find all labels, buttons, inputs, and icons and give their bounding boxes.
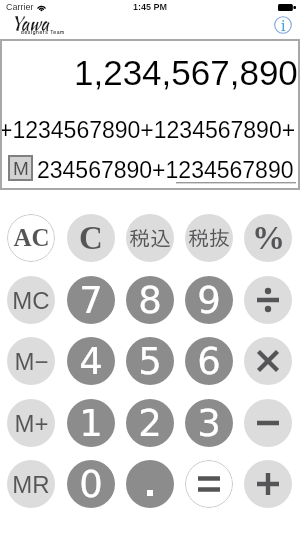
staticText: designers Team <box>21 29 65 35</box>
staticText: 1:45 PM <box>133 2 168 12</box>
button[interactable]: 3 <box>185 399 233 447</box>
staticText: i <box>281 16 286 34</box>
button[interactable]: 8 <box>126 276 174 324</box>
staticText: % <box>252 220 285 257</box>
staticText: 0 <box>79 463 103 506</box>
staticText: M− <box>14 348 49 375</box>
staticText: 5 <box>138 340 162 383</box>
button[interactable]: Info <box>274 16 292 34</box>
button[interactable]: 6 <box>185 337 233 385</box>
staticText: 4 <box>79 340 103 383</box>
button[interactable]: Decimal point <box>126 460 174 508</box>
staticText: Carrier <box>6 2 34 12</box>
button[interactable]: Add <box>244 460 292 508</box>
button[interactable]: MR <box>7 460 55 508</box>
button[interactable]: 4 <box>67 337 115 385</box>
button[interactable]: 7 <box>67 276 115 324</box>
button[interactable]: C <box>67 214 115 262</box>
staticText: C <box>79 220 103 257</box>
staticText: 234567890+1234567890 <box>37 157 294 183</box>
button[interactable]: Equals <box>185 460 233 508</box>
staticText: M+ <box>14 410 49 437</box>
button[interactable]: 5 <box>126 337 174 385</box>
button[interactable]: M+ <box>7 399 55 447</box>
button[interactable]: % <box>244 214 292 262</box>
staticText: 7 <box>79 279 103 322</box>
button[interactable]: 税込 <box>126 214 174 262</box>
staticText: 税込 <box>129 228 171 249</box>
staticText: 9 <box>197 279 221 322</box>
button[interactable]: 9 <box>185 276 233 324</box>
staticText: 1,234,567,890 <box>74 53 298 92</box>
staticText: AC <box>13 224 50 252</box>
staticText: 3 <box>197 402 221 445</box>
button[interactable]: Subtract <box>244 399 292 447</box>
button[interactable]: 2 <box>126 399 174 447</box>
staticText: 8 <box>138 279 162 322</box>
staticText: 1 <box>79 402 103 445</box>
staticText: +1234567890+1234567890+ <box>0 117 296 143</box>
staticText: MC <box>12 287 50 314</box>
staticText: 税抜 <box>188 228 230 249</box>
staticText: 2 <box>138 402 162 445</box>
button[interactable]: 1 <box>67 399 115 447</box>
button[interactable]: Multiply <box>244 337 292 385</box>
button[interactable]: 0 <box>67 460 115 508</box>
button[interactable]: 税抜 <box>185 214 233 262</box>
staticText: 6 <box>197 340 221 383</box>
button[interactable]: M− <box>7 337 55 385</box>
button[interactable]: Divide <box>244 276 292 324</box>
staticText: Yawa <box>11 10 49 36</box>
button[interactable]: AC <box>7 214 55 262</box>
staticText: MR <box>12 471 50 498</box>
button[interactable]: MC <box>7 276 55 324</box>
staticText: M <box>13 158 29 179</box>
